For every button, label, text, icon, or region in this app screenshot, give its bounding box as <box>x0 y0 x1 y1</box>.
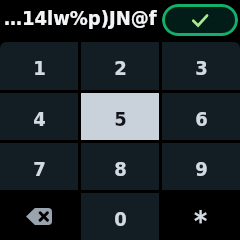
button[interactable]: Star <box>162 193 240 240</box>
button[interactable]: 9 <box>162 143 240 190</box>
staticText: 9 <box>195 157 208 180</box>
staticText: 4 <box>33 107 46 130</box>
staticText: 2 <box>114 56 127 79</box>
button[interactable]: Backspace <box>0 193 78 240</box>
button[interactable]: 1 <box>0 42 78 90</box>
staticText: 1 <box>33 56 46 79</box>
button[interactable]: 0 <box>81 193 159 240</box>
button[interactable]: 5 <box>81 93 159 140</box>
button[interactable]: 8 <box>81 143 159 190</box>
staticText: 6 <box>195 107 208 130</box>
button[interactable]: 4 <box>0 93 78 140</box>
staticText: 8 <box>114 157 127 180</box>
staticText: 3 <box>195 56 208 79</box>
staticText: 0 <box>114 207 127 230</box>
staticText: * <box>194 205 208 238</box>
button[interactable]: Confirm <box>162 4 238 36</box>
staticText: …14lw%p)JN@f <box>4 6 157 29</box>
button[interactable]: 7 <box>0 143 78 190</box>
button[interactable]: 6 <box>162 93 240 140</box>
button[interactable]: 2 <box>81 42 159 90</box>
staticText: 5 <box>114 107 127 130</box>
staticText: 7 <box>33 157 46 180</box>
button[interactable]: 3 <box>162 42 240 90</box>
